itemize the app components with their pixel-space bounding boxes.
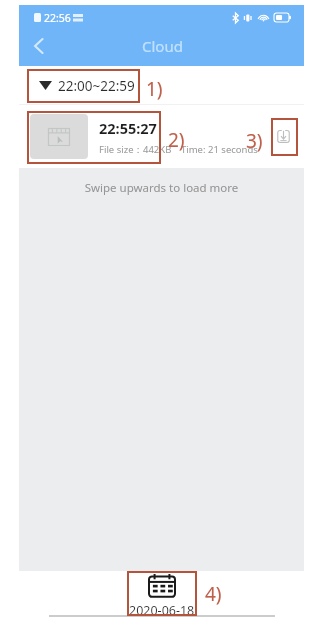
staticText: 2) — [168, 127, 185, 153]
button[interactable]: 22:55:27 — [19, 105, 304, 168]
button[interactable]: Download — [272, 125, 294, 147]
button[interactable]: 22:00~22:59 — [19, 66, 149, 105]
staticText: 2020-06-18 — [129, 602, 195, 619]
staticText: Time: 21 seconds — [181, 143, 258, 156]
staticText: Swipe upwards to load more — [19, 180, 304, 196]
staticText: Cloud — [142, 36, 183, 56]
button[interactable]: 2020-06-18 — [126, 572, 198, 619]
staticText: 4) — [205, 581, 222, 607]
staticText: 22:00~22:59 — [58, 77, 135, 95]
button[interactable]: Back — [25, 33, 51, 59]
staticText: 3) — [246, 128, 263, 154]
staticText: 1) — [146, 76, 163, 102]
staticText: 22:55:27 — [99, 118, 157, 138]
staticText: File size：442KB — [99, 143, 172, 156]
staticText: 22:56 — [44, 11, 71, 25]
